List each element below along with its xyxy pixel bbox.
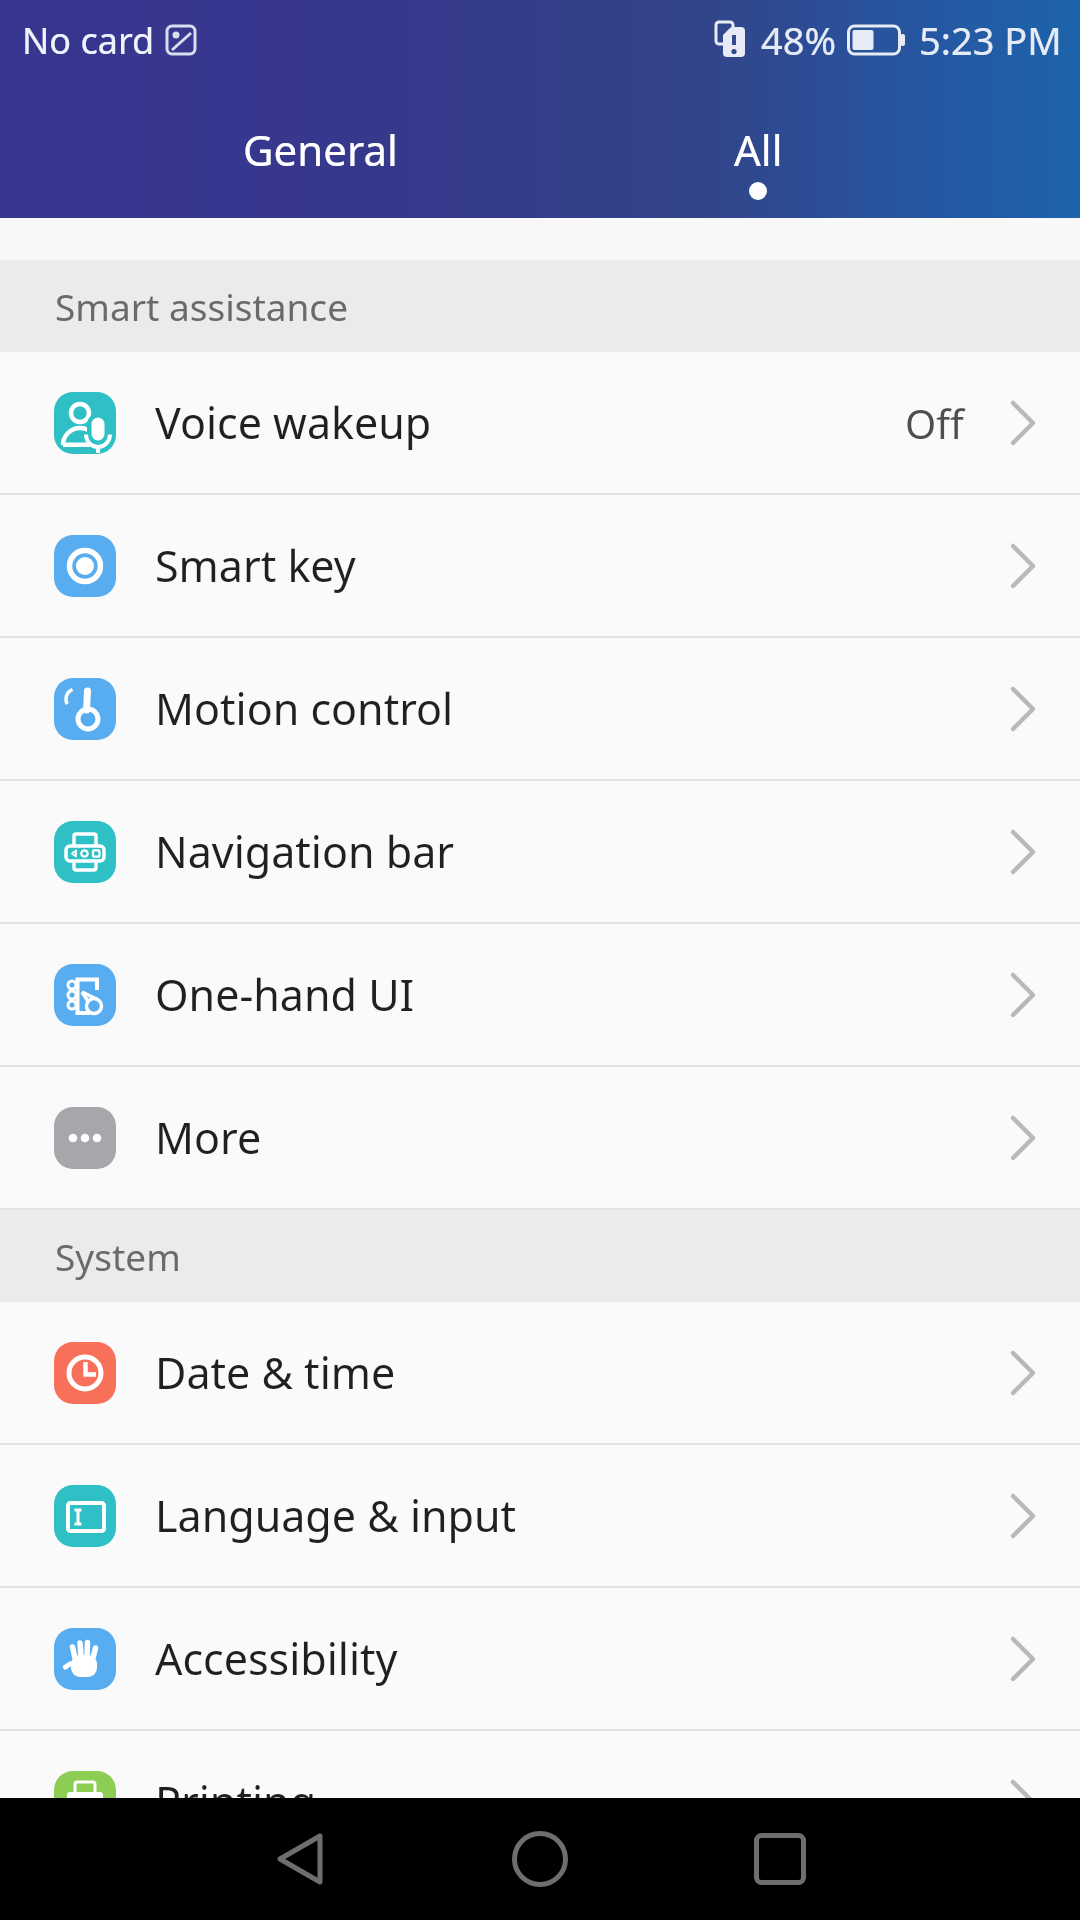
staticText: Navigation bar bbox=[155, 822, 1010, 881]
staticText: Smart key bbox=[155, 536, 1010, 595]
button[interactable]: General bbox=[170, 80, 470, 218]
staticText: No card bbox=[22, 16, 155, 65]
button[interactable]: All bbox=[608, 80, 908, 218]
staticText: General bbox=[243, 121, 398, 178]
button[interactable]: Language & input bbox=[0, 1445, 1080, 1586]
staticText: 5:23 PM bbox=[919, 14, 1062, 66]
button[interactable]: Date & time bbox=[0, 1302, 1080, 1443]
staticText: All bbox=[734, 121, 783, 178]
button[interactable] bbox=[150, 1798, 450, 1920]
button[interactable]: One-hand UI bbox=[0, 924, 1080, 1065]
button[interactable]: Accessibility bbox=[0, 1588, 1080, 1729]
button[interactable]: Voice wakeup bbox=[0, 352, 1080, 493]
button[interactable]: Smart key bbox=[0, 495, 1080, 636]
button[interactable]: More bbox=[0, 1067, 1080, 1208]
staticText: Off bbox=[905, 396, 964, 450]
button[interactable] bbox=[390, 1798, 690, 1920]
button[interactable]: Printing bbox=[0, 1731, 1080, 1798]
staticText: More bbox=[155, 1108, 1010, 1167]
staticText: 48% bbox=[761, 14, 837, 66]
staticText: System bbox=[55, 1231, 181, 1281]
staticText: Motion control bbox=[155, 679, 1010, 738]
staticText: Voice wakeup bbox=[155, 393, 905, 452]
staticText: One-hand UI bbox=[155, 965, 1010, 1024]
staticText: Smart assistance bbox=[55, 281, 349, 331]
staticText: Accessibility bbox=[155, 1629, 1010, 1688]
button[interactable] bbox=[630, 1798, 930, 1920]
button[interactable]: Motion control bbox=[0, 638, 1080, 779]
staticText: Language & input bbox=[155, 1486, 1010, 1545]
button[interactable]: Navigation bar bbox=[0, 781, 1080, 922]
staticText: Printing bbox=[155, 1772, 1010, 1798]
staticText: Date & time bbox=[155, 1343, 1010, 1402]
